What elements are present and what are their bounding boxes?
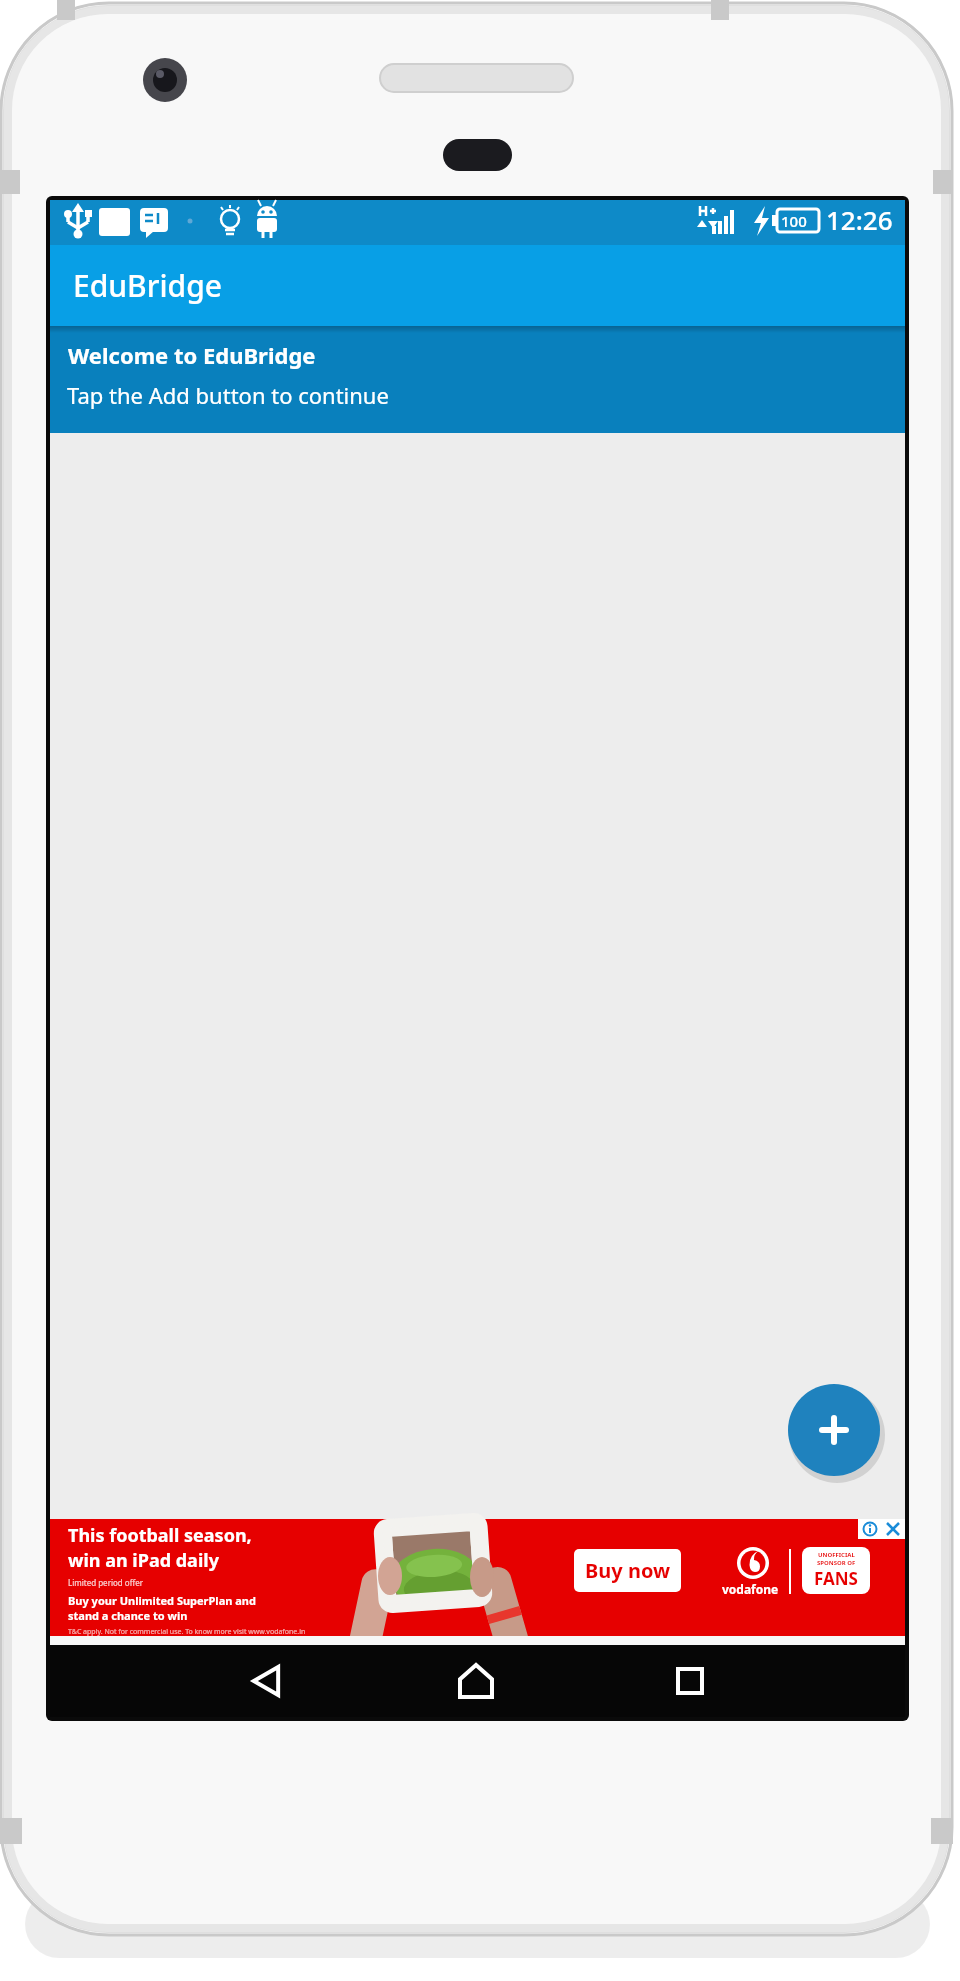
button[interactable]: Welcome to EduBridge <box>50 326 905 433</box>
staticText: Buy now <box>585 1557 671 1584</box>
staticText: Tap the Add button to continue <box>67 380 389 410</box>
staticText: This football season, <box>68 1523 252 1548</box>
staticText: UNOFFICIAL <box>818 1551 855 1559</box>
button[interactable] <box>788 1384 880 1476</box>
button[interactable] <box>654 1645 726 1717</box>
staticText: 12:26 <box>826 202 893 237</box>
staticText: T&C apply. Not for commercial use. To kn… <box>68 1627 306 1636</box>
staticText: stand a chance to win <box>68 1608 188 1623</box>
staticText: Limited period offer <box>68 1577 143 1588</box>
staticText: win an iPad daily <box>68 1548 219 1573</box>
button[interactable] <box>230 1645 302 1717</box>
staticText: 100 <box>781 211 807 231</box>
staticText: EduBridge <box>73 265 222 306</box>
button[interactable]: Buy now <box>574 1549 681 1592</box>
button[interactable]: EduBridge <box>50 245 905 326</box>
button[interactable]: This football season, <box>50 1519 905 1636</box>
staticText: vodafone <box>722 1581 779 1597</box>
button[interactable] <box>440 1645 512 1717</box>
button[interactable] <box>858 1519 881 1539</box>
button[interactable] <box>881 1519 905 1539</box>
staticText: SPONSOR OF <box>817 1559 856 1567</box>
staticText: Buy your Unlimited SuperPlan and <box>68 1593 256 1608</box>
staticText: FANS <box>814 1567 858 1590</box>
staticText: Welcome to EduBridge <box>68 340 316 370</box>
